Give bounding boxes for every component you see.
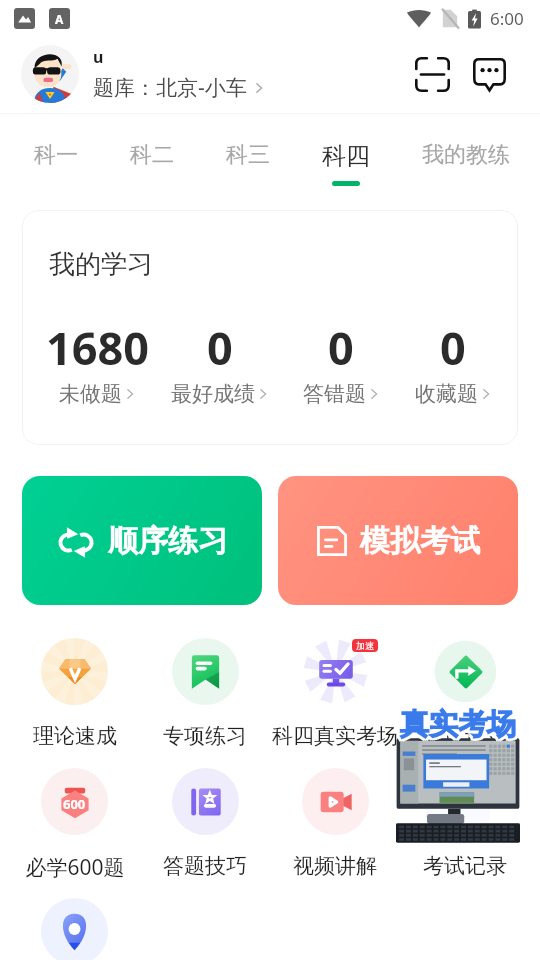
staticText: 理论速成 — [33, 723, 117, 749]
button[interactable]: Location — [9, 894, 139, 960]
staticText: 真实考场 — [398, 704, 514, 741]
button[interactable]: Real exam room promotion — [396, 703, 520, 847]
staticText: 最好成绩 — [171, 381, 255, 407]
button[interactable]: 科四 — [296, 122, 396, 186]
staticText: 顺序练习 — [108, 522, 228, 560]
button[interactable]: Scan QR code — [409, 51, 455, 97]
staticText: 考试记录 — [423, 853, 507, 879]
button[interactable]: 我的教练 — [396, 122, 536, 184]
staticText: 1680 — [46, 317, 149, 378]
staticText: 必学600题 — [25, 853, 125, 882]
staticText: 模拟考试 — [360, 522, 480, 560]
staticText: 加速 — [356, 640, 374, 651]
staticText: 真实考场 — [402, 706, 518, 743]
staticText: 科四 — [322, 141, 370, 171]
staticText: 答错题 — [303, 381, 366, 407]
staticText: u — [93, 46, 104, 68]
staticText: 科四真实考场 — [272, 723, 398, 749]
staticText: 真实考场 — [398, 708, 514, 745]
staticText: 真实考场 — [402, 704, 518, 741]
button[interactable]: 顺序练习 — [22, 476, 262, 605]
staticText: 真实考场 — [398, 706, 514, 743]
button[interactable]: 科三 — [200, 122, 296, 184]
staticText: 专项练习 — [163, 723, 247, 749]
button[interactable]: 加速 — [270, 634, 400, 749]
staticText: 0 — [440, 317, 466, 378]
staticText: 真实考场 — [400, 706, 516, 743]
button[interactable]: 我的学习 — [22, 210, 518, 445]
staticText: 科三 — [226, 141, 270, 169]
button[interactable]: 答题技巧 — [140, 764, 270, 879]
button[interactable]: 600 — [9, 764, 140, 882]
staticText: 视频讲解 — [293, 853, 377, 879]
button[interactable]: 0 — [276, 317, 406, 407]
button[interactable]: 1680 — [32, 317, 162, 407]
staticText: 科一 — [34, 141, 78, 169]
staticText: 考试记录 — [423, 723, 507, 749]
staticText: 我的学习 — [49, 248, 153, 281]
staticText: 收藏题 — [415, 381, 478, 407]
button[interactable]: 专项练习 — [140, 634, 270, 749]
staticText: 答题技巧 — [163, 853, 247, 879]
button[interactable]: 考试记录 — [400, 634, 530, 749]
staticText: 题库：北京-小车 — [93, 73, 247, 102]
other: Location — [41, 898, 108, 960]
button[interactable]: 考试记录 — [400, 764, 530, 879]
button[interactable]: 科一 — [8, 122, 104, 184]
staticText: 我的教练 — [422, 141, 510, 169]
button[interactable]: Profile — [21, 45, 79, 103]
button[interactable]: 视频讲解 — [270, 764, 400, 879]
button[interactable]: 科二 — [104, 122, 200, 184]
staticText: 未做题 — [59, 381, 122, 407]
staticText: 6:00 — [490, 7, 524, 30]
staticText: 600 — [63, 795, 86, 813]
staticText: A — [55, 11, 64, 27]
staticText: 真实考场 — [400, 704, 516, 741]
staticText: 科二 — [130, 141, 174, 169]
staticText: 0 — [207, 317, 233, 378]
button[interactable]: 模拟考试 — [278, 476, 518, 605]
staticText: 真实考场 — [402, 708, 518, 745]
staticText: 0 — [328, 317, 354, 378]
button[interactable]: 0 — [388, 317, 518, 407]
button[interactable]: 0 — [155, 317, 285, 407]
staticText: 真实考场 — [400, 708, 516, 745]
button[interactable]: Messages — [466, 51, 512, 97]
button[interactable]: 理论速成 — [9, 634, 140, 749]
